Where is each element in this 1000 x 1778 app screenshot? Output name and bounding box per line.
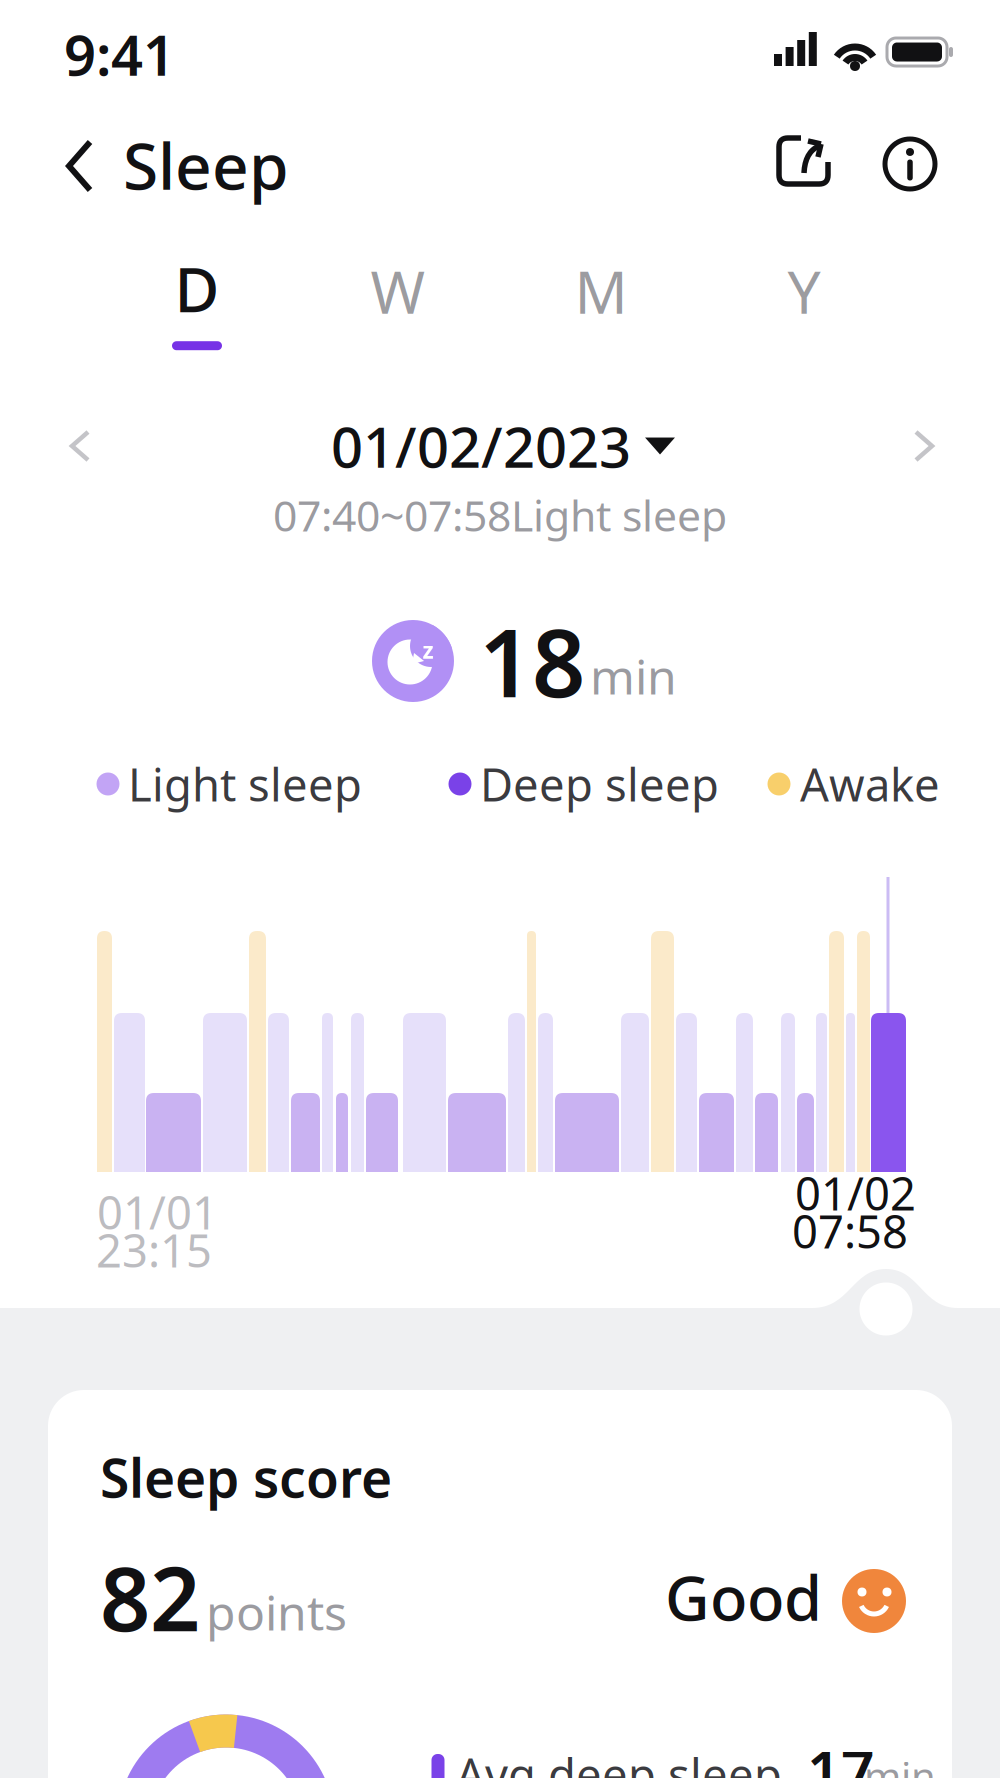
button[interactable]: W: [343, 261, 453, 321]
staticText: 18: [479, 599, 585, 723]
staticText: Y: [787, 252, 820, 330]
button[interactable]: Expand: [859, 1282, 912, 1335]
staticText: Sleep score: [100, 1442, 392, 1512]
staticText: M: [574, 252, 627, 330]
button[interactable]: Y: [749, 261, 859, 321]
staticText: 07:40~07:58Light sleep: [273, 487, 727, 543]
button[interactable]: 01/02/2023: [331, 409, 675, 483]
button[interactable]: M: [546, 261, 656, 321]
staticText: D: [174, 248, 219, 329]
staticText: Avg deep sleep: [456, 1744, 782, 1778]
staticText: Light sleep: [128, 754, 362, 814]
staticText: 82: [100, 1539, 200, 1655]
staticText: Awake: [800, 754, 940, 814]
staticText: Good: [665, 1556, 822, 1638]
button[interactable]: D: [142, 257, 252, 341]
staticText: 17: [807, 1732, 875, 1778]
staticText: min: [864, 1749, 936, 1778]
staticText: 01/01: [97, 1182, 218, 1242]
button[interactable]: Previous day: [70, 430, 90, 462]
staticText: 07:58: [792, 1201, 908, 1261]
staticText: Sleep: [123, 122, 289, 207]
staticText: points: [206, 1580, 347, 1644]
staticText: 23:15: [96, 1220, 212, 1280]
staticText: 9:41: [64, 17, 175, 91]
staticText: 01/02/2023: [331, 409, 631, 483]
staticText: W: [370, 252, 425, 330]
button[interactable]: Back: [66, 140, 94, 192]
button[interactable]: Info: [883, 137, 937, 191]
staticText: 01/02: [795, 1163, 916, 1223]
staticText: min: [590, 644, 677, 708]
button[interactable]: Share: [777, 134, 831, 188]
staticText: z: [422, 635, 433, 665]
button[interactable]: Next day: [914, 430, 934, 462]
staticText: Deep sleep: [480, 754, 719, 814]
